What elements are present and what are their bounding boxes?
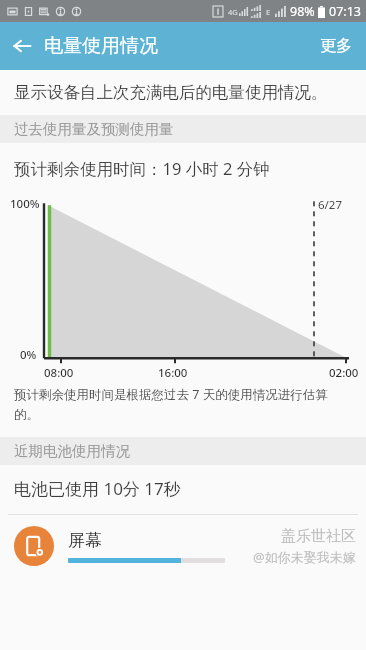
button[interactable]: 更多 [306,26,366,66]
staticText: 0% [20,347,37,363]
staticText: 显示设备自上次充满电后的电量使用情况。 [14,82,336,103]
staticText: 4G [228,7,238,17]
staticText: 更多 [320,36,352,56]
staticText: 近期电池使用情况 [14,442,130,460]
staticText: 屏幕 [68,530,102,551]
staticText: 07:13 [329,3,361,20]
staticText: 预计剩余使用时间：19 小时 2 分钟 [14,157,270,180]
button[interactable]: Back [0,24,44,68]
staticText: E [266,7,271,17]
staticText: 02:00 [329,365,359,381]
staticText: 电池已使用 10分 17秒 [14,477,181,500]
staticText: @如你未娶我未嫁 [253,548,356,566]
staticText: 预计剩余使用时间是根据您过去 7 天的使用情况进行估算的。 [14,386,350,423]
staticText: 08:00 [44,365,74,381]
staticText: 盖乐世社区 [281,527,356,546]
staticText: 电量使用情况 [44,34,158,58]
staticText: 过去使用量及预测使用量 [14,120,174,138]
staticText: 6/27 [318,197,343,213]
button[interactable]: 屏幕 [0,515,366,577]
staticText: 16:00 [158,365,188,381]
staticText: 98% [290,3,315,20]
staticText: 100% [10,196,40,212]
